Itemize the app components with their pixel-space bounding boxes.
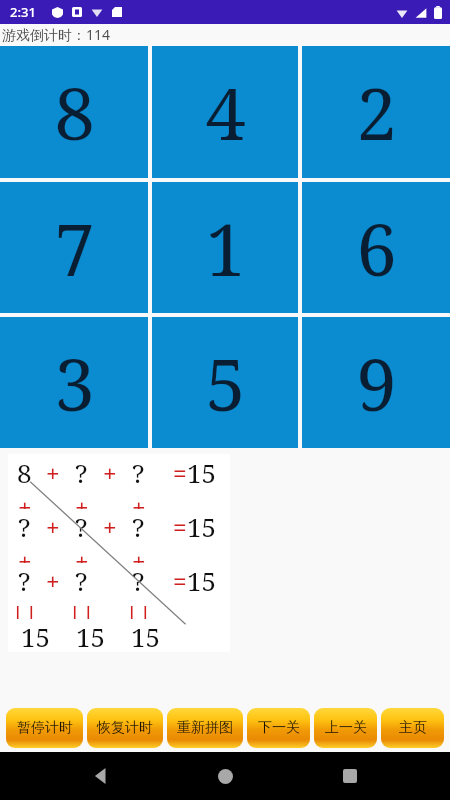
staticText: = [173, 456, 187, 489]
staticText: 1 [205, 199, 246, 297]
staticText: 恢复计时 [97, 719, 153, 737]
staticText: 15 [187, 563, 217, 598]
button[interactable]: 8 [0, 46, 148, 178]
staticText: 重新拼图 [177, 719, 233, 737]
staticText: ? [132, 563, 145, 598]
button[interactable]: 5 [152, 317, 298, 448]
staticText: 9 [356, 334, 397, 432]
button[interactable]: 9 [302, 317, 450, 448]
staticText: + [46, 564, 60, 597]
staticText: 15 [187, 455, 217, 490]
staticText: + [103, 510, 117, 543]
staticText: ? [132, 509, 145, 544]
staticText: 15 [21, 619, 51, 652]
staticText: 游戏倒计时：114 [2, 25, 111, 44]
staticText: 2:31 [10, 3, 36, 21]
staticText: ? [18, 509, 31, 544]
staticText: ? [18, 563, 31, 598]
staticText: 7 [54, 199, 95, 297]
staticText: 上一关 [325, 719, 367, 737]
button[interactable]: 主页 [381, 708, 444, 748]
button[interactable]: Recents [326, 752, 374, 800]
staticText: 3 [54, 334, 95, 432]
staticText: 主页 [399, 719, 427, 737]
button[interactable]: Back [77, 752, 125, 800]
button[interactable]: 3 [0, 317, 148, 448]
staticText: + [18, 544, 32, 563]
button[interactable]: 1 [152, 182, 298, 313]
staticText: 15 [187, 509, 217, 544]
button[interactable]: 6 [302, 182, 450, 313]
button[interactable]: 暂停计时 [6, 708, 83, 748]
staticText: + [75, 490, 89, 509]
staticText: 6 [356, 199, 397, 297]
staticText: || [11, 598, 39, 619]
button[interactable]: 重新拼图 [167, 708, 243, 748]
staticText: || [125, 598, 153, 619]
staticText: 暂停计时 [17, 719, 73, 737]
staticText: + [132, 490, 146, 509]
staticText: 5 [205, 334, 246, 432]
staticText: = [173, 564, 187, 597]
staticText: 15 [131, 619, 161, 652]
button[interactable]: 2 [302, 46, 450, 178]
staticText: + [75, 544, 89, 563]
button[interactable]: 上一关 [314, 708, 377, 748]
staticText: + [18, 490, 32, 509]
staticText: 8 [54, 63, 95, 161]
button[interactable]: 4 [152, 46, 298, 178]
staticText: + [46, 510, 60, 543]
staticText: ? [75, 509, 88, 544]
staticText: ? [132, 455, 145, 490]
staticText: 4 [205, 63, 246, 161]
staticText: 15 [76, 619, 106, 652]
staticText: 2 [356, 63, 397, 161]
staticText: + [103, 456, 117, 489]
staticText: 下一关 [258, 719, 300, 737]
button[interactable]: 7 [0, 182, 148, 313]
staticText: 8 [17, 455, 32, 490]
staticText: + [46, 456, 60, 489]
staticText: = [173, 510, 187, 543]
staticText: ? [75, 563, 88, 598]
button[interactable]: 恢复计时 [87, 708, 163, 748]
staticText: || [68, 598, 96, 619]
button[interactable]: 下一关 [247, 708, 310, 748]
staticText: ? [75, 455, 88, 490]
button[interactable]: Home [201, 752, 249, 800]
staticText: + [132, 544, 146, 563]
